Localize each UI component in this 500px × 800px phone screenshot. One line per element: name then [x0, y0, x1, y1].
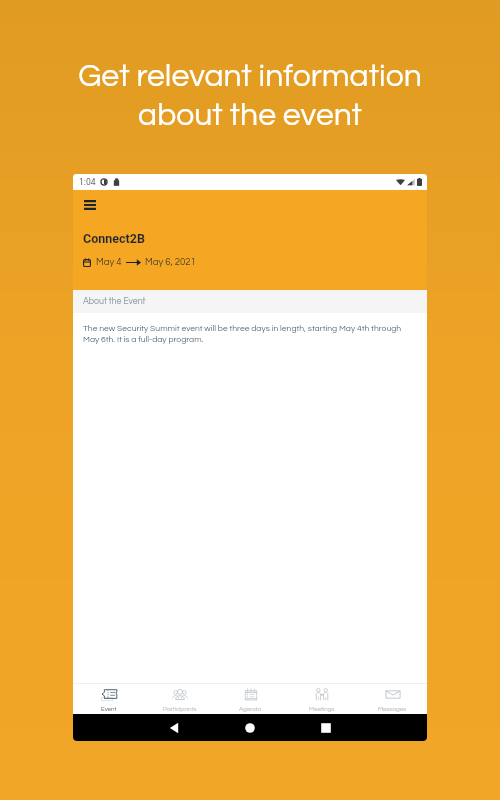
button[interactable]: Participants [144, 684, 215, 714]
staticText: Participants [163, 706, 197, 712]
staticText: 1:04 [79, 177, 96, 187]
button[interactable]: Messages [357, 684, 427, 714]
staticText: May 6, 2021 [145, 257, 196, 267]
button[interactable]: Back [136, 714, 212, 741]
staticText: The new Security Summit event will be th… [83, 324, 407, 344]
staticText: Event [101, 706, 117, 712]
button[interactable]: Meetings [286, 684, 357, 714]
staticText: Get relevant information about the event [78, 60, 422, 131]
button[interactable]: Event [73, 684, 144, 714]
button[interactable]: Open navigation menu [75, 190, 105, 220]
staticText: Connect2B [83, 231, 145, 246]
button[interactable]: Recent apps [288, 714, 364, 741]
staticText: Messages [378, 706, 407, 712]
staticText: About the Event [83, 297, 146, 306]
staticText: Meetings [309, 706, 335, 712]
staticText: Agenda [239, 706, 262, 712]
button[interactable]: Home [212, 714, 288, 741]
button[interactable]: Agenda [215, 684, 286, 714]
staticText: May 4 [96, 257, 122, 267]
